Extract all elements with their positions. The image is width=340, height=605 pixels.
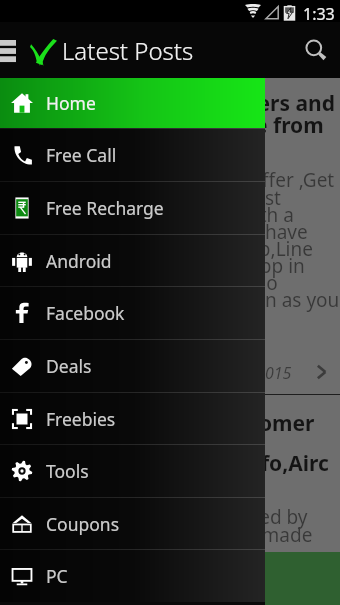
button[interactable]: Coupons bbox=[0, 497, 265, 550]
button[interactable]: PC bbox=[0, 549, 265, 602]
button[interactable]: Free Recharge bbox=[0, 181, 265, 234]
staticText: Facebook bbox=[46, 301, 125, 325]
staticText: Android bbox=[46, 249, 112, 273]
staticText: Reliance Jio 4G Sim is provided by Relia… bbox=[10, 504, 313, 547]
button[interactable]: Tools bbox=[0, 444, 265, 497]
staticText: Reliance Jio 4G Sim Customer bbox=[10, 409, 315, 438]
staticText: Deals bbox=[46, 354, 92, 378]
staticText: Free Call bbox=[46, 143, 117, 167]
button[interactable]: Deals bbox=[0, 339, 265, 392]
staticText: Latest Posts bbox=[62, 34, 194, 67]
button[interactable]: Freebies bbox=[0, 392, 265, 445]
staticText: Best 5 Free Recharge apps offer ,Get Fre… bbox=[10, 167, 340, 312]
staticText: Home bbox=[46, 91, 96, 115]
button[interactable]: Android bbox=[0, 234, 265, 287]
staticText: Coupons bbox=[46, 512, 120, 536]
button[interactable]: Free Call bbox=[0, 128, 265, 181]
button[interactable]: Search bbox=[292, 22, 340, 78]
staticText: PC bbox=[46, 564, 68, 588]
staticText: Top 5 best Recharge Offers and tricks to… bbox=[10, 89, 335, 139]
button[interactable]: Facebook bbox=[0, 286, 265, 339]
button[interactable]: Home bbox=[0, 78, 265, 128]
staticText: Free Recharge Posted on July 23, 2015 bbox=[10, 362, 292, 384]
staticText: Freebies bbox=[46, 407, 116, 431]
button[interactable]: Open navigation drawer bbox=[0, 22, 22, 78]
staticText: Tools bbox=[46, 459, 89, 483]
button[interactable]: Get it on Google Play bbox=[8, 561, 160, 595]
staticText: Care Number, Idea,Vodafo,Airc bbox=[10, 449, 329, 478]
staticText: Free Recharge bbox=[46, 196, 164, 220]
staticText: 1:33 bbox=[303, 3, 335, 25]
staticText: GET IT ON bbox=[36, 561, 80, 573]
staticText: Google play bbox=[36, 573, 143, 595]
